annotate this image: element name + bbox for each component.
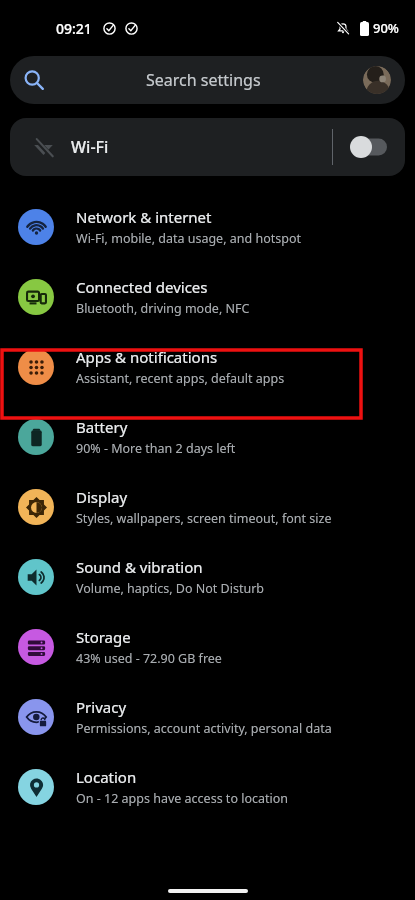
button[interactable]: Sound & vibration [0, 542, 415, 612]
staticText: Sound & vibration [76, 557, 203, 577]
staticText: Apps & notifications [76, 347, 218, 367]
button[interactable]: Apps & notifications [0, 332, 415, 402]
button[interactable]: Location [0, 752, 415, 822]
button[interactable]: Network & internet [0, 192, 415, 262]
staticText: Network & internet [76, 207, 212, 227]
button[interactable]: Storage [0, 612, 415, 682]
button[interactable]: Connected devices [0, 262, 415, 332]
button[interactable]: Account [363, 66, 391, 94]
staticText: 90% - More than 2 days left [76, 440, 236, 457]
staticText: Search settings [146, 69, 261, 91]
staticText: Privacy [76, 697, 127, 717]
staticText: Wi-Fi [71, 136, 109, 158]
button[interactable]: Display [0, 472, 415, 542]
staticText: Wi-Fi, mobile, data usage, and hotspot [76, 230, 301, 247]
staticText: Bluetooth, driving mode, NFC [76, 300, 250, 317]
staticText: Location [76, 767, 137, 787]
staticText: Storage [76, 627, 131, 647]
button[interactable]: Battery [0, 402, 415, 472]
staticText: Display [76, 487, 128, 507]
staticText: Volume, haptics, Do Not Disturb [76, 580, 265, 597]
staticText: Connected devices [76, 277, 208, 297]
staticText: Permissions, account activity, personal … [76, 720, 332, 737]
staticText: Battery [76, 417, 128, 437]
staticText: On - 12 apps have access to location [76, 790, 289, 807]
staticText: Styles, wallpapers, screen timeout, font… [76, 510, 332, 527]
button[interactable]: Privacy [0, 682, 415, 752]
other: Search [24, 70, 44, 90]
button[interactable]: Wi-Fi toggle [349, 132, 395, 162]
staticText: 43% used - 72.90 GB free [76, 650, 222, 667]
staticText: Assistant, recent apps, default apps [76, 370, 285, 387]
staticText: 90% [373, 19, 399, 37]
button[interactable]: Search [10, 56, 405, 104]
button[interactable]: Wi-Fi [10, 118, 405, 176]
staticText: 09:21 [56, 19, 92, 38]
